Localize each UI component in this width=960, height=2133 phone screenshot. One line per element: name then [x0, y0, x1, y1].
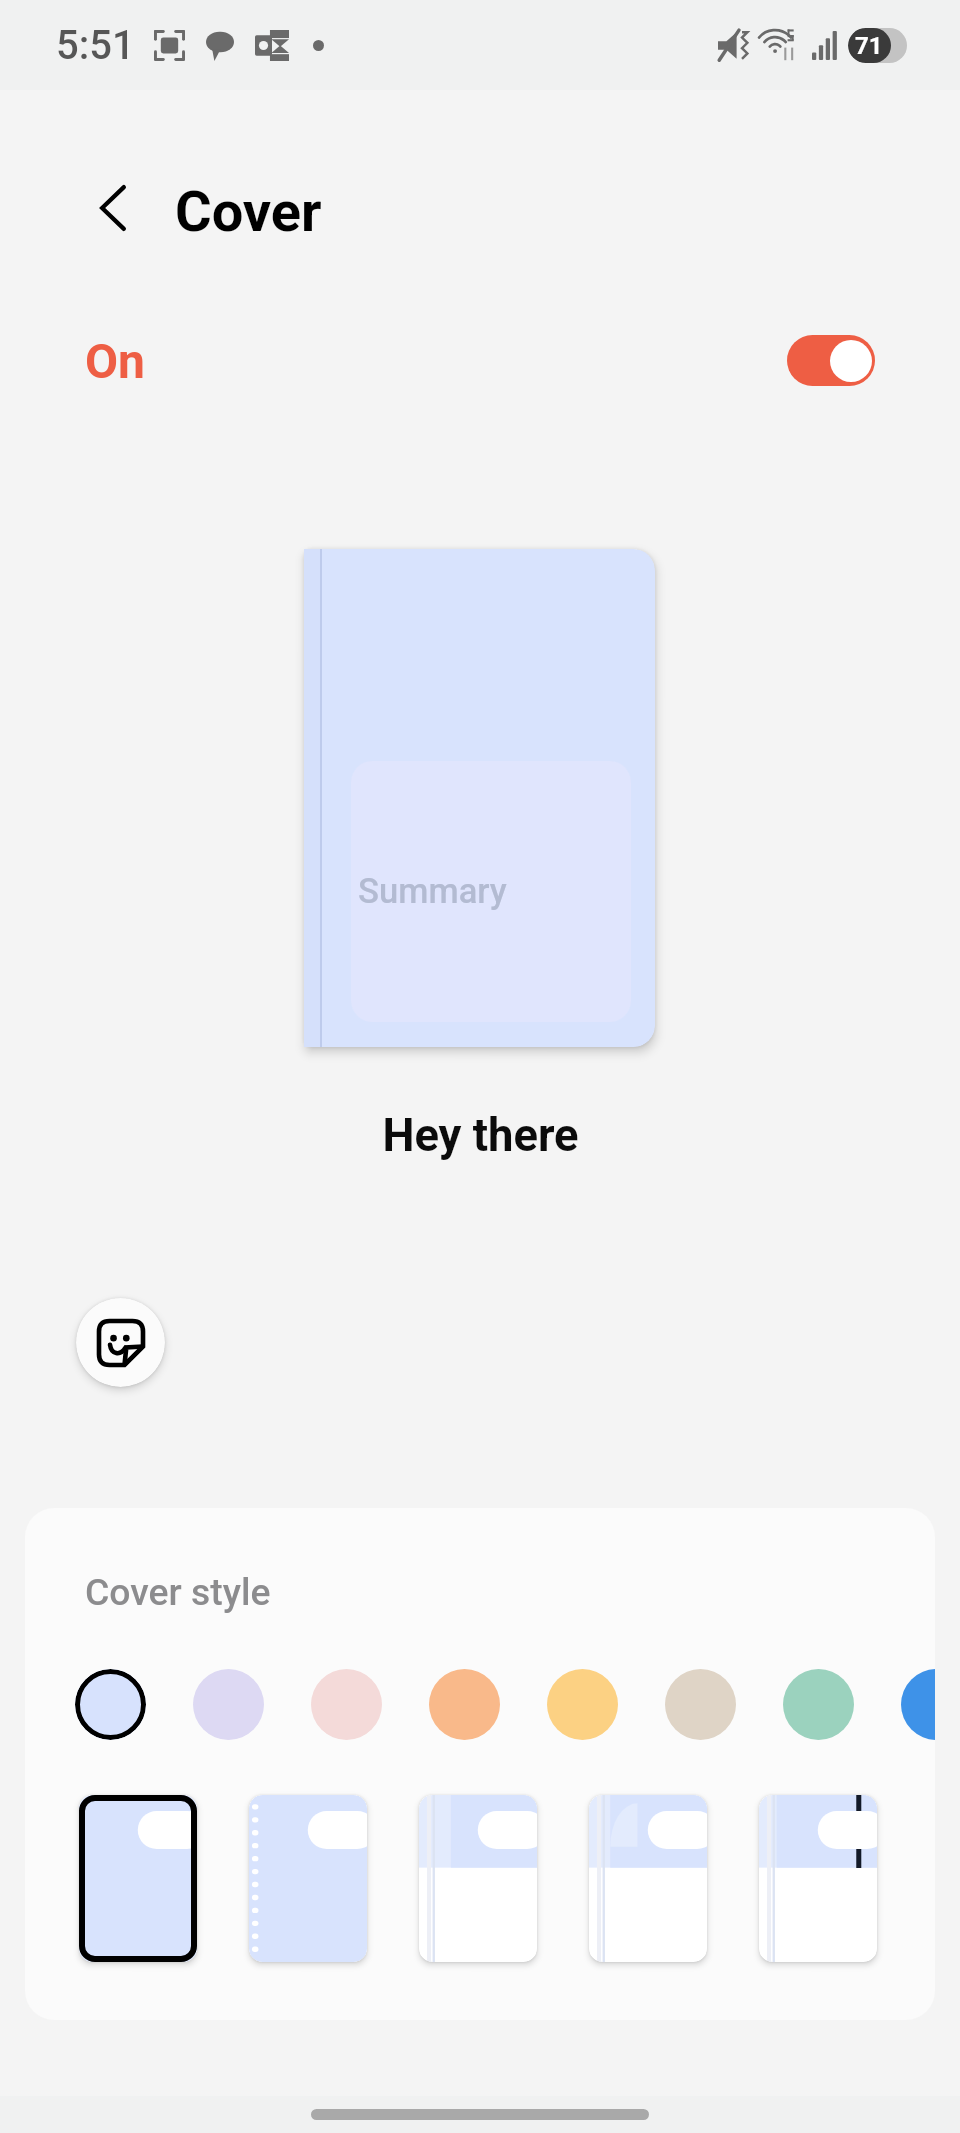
button[interactable]: Colour 8 [901, 1669, 935, 1740]
staticText: Cover [175, 179, 322, 245]
staticText: 5:51 [56, 22, 135, 69]
button[interactable]: Cover style 3 [419, 1795, 537, 1962]
staticText: Hey there [382, 1109, 579, 1162]
button[interactable]: Cover style 4 [589, 1795, 707, 1962]
button[interactable]: Colour 7 [783, 1669, 854, 1740]
button[interactable]: Cover style 1 [79, 1795, 197, 1962]
button[interactable]: Colour 4 [429, 1669, 500, 1740]
button[interactable]: Cover style 5 [759, 1795, 877, 1962]
staticText: 71 [855, 32, 883, 60]
button[interactable]: Colour 6 [665, 1669, 736, 1740]
button[interactable]: Colour 2 [193, 1669, 264, 1740]
staticText: Summary [358, 871, 507, 912]
button[interactable]: Colour 3 [311, 1669, 382, 1740]
button[interactable]: Cover enabled toggle [787, 335, 875, 386]
button[interactable]: Colour 1 [75, 1669, 146, 1740]
button[interactable]: Add sticker [76, 1298, 165, 1387]
staticText: Cover style [85, 1570, 271, 1614]
button[interactable]: Back [67, 149, 158, 266]
button[interactable]: Cover style 2 [249, 1795, 367, 1962]
staticText: On [85, 333, 145, 389]
button[interactable]: Colour 5 [547, 1669, 618, 1740]
